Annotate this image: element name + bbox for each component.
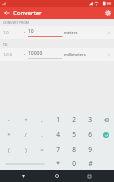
button[interactable]: 3 — [82, 112, 98, 127]
staticText: ( — [8, 146, 10, 154]
staticText: Converter — [13, 9, 42, 17]
staticText: 6 — [88, 130, 92, 139]
button[interactable]: - — [0, 112, 17, 127]
button[interactable]: 0 — [66, 157, 82, 170]
button[interactable]: Backspace — [98, 112, 114, 127]
staticText: 5 — [72, 130, 76, 139]
button[interactable]: Settings — [101, 7, 114, 19]
button[interactable]: Clear — [106, 30, 112, 36]
staticText: 1.0 — [3, 30, 9, 35]
staticText: CONVERT FROM — [3, 20, 29, 25]
staticText: * — [56, 159, 60, 168]
button[interactable]: Recents — [78, 170, 101, 182]
button[interactable]: Clear — [106, 52, 112, 58]
staticText: = — [40, 146, 44, 154]
staticText: 4 — [56, 130, 60, 139]
staticText: 1.0.0 — [3, 52, 13, 57]
staticText: meters — [64, 30, 78, 35]
button[interactable]: ) — [17, 142, 34, 157]
button[interactable]: 1.0 — [0, 26, 114, 39]
staticText: / — [24, 131, 27, 139]
button[interactable]: * — [0, 127, 17, 142]
button[interactable]: # — [82, 157, 98, 170]
button[interactable]: = — [34, 142, 50, 157]
staticText: . — [41, 131, 43, 139]
staticText: millimeters — [64, 52, 86, 57]
button[interactable]: * — [50, 157, 66, 170]
staticText: * — [7, 131, 11, 139]
staticText: 1 — [56, 115, 60, 124]
button[interactable]: ( — [0, 142, 17, 157]
button[interactable]: Navigate up — [0, 7, 13, 19]
button[interactable]: Home — [45, 170, 68, 182]
staticText: 0 — [72, 159, 76, 168]
staticText: 10 — [28, 28, 34, 35]
staticText: 10000 — [28, 50, 43, 57]
button[interactable]: 4 — [50, 127, 66, 142]
button[interactable]: / — [17, 127, 34, 142]
staticText: + — [24, 116, 28, 124]
button[interactable]: + — [17, 112, 34, 127]
staticText: # — [88, 159, 93, 168]
button[interactable]: Enter — [98, 127, 114, 142]
staticText: 3 — [88, 115, 92, 124]
button[interactable]: 8 — [66, 142, 82, 157]
button[interactable]: 2 — [66, 112, 82, 127]
button[interactable]: 5 — [66, 127, 82, 142]
staticText: 9 — [88, 145, 92, 154]
staticText: ) — [25, 146, 27, 154]
button[interactable]: Back — [12, 170, 35, 182]
button[interactable]: 6 — [82, 127, 98, 142]
button[interactable]: Space — [0, 157, 50, 170]
staticText: 2 — [72, 115, 76, 124]
staticText: TO — [3, 42, 8, 47]
staticText: 8 — [72, 145, 76, 154]
staticText: , — [41, 116, 43, 124]
staticText: - — [8, 116, 10, 124]
button[interactable]: 9 — [82, 142, 98, 157]
button[interactable]: 1 — [50, 112, 66, 127]
button[interactable]: 7 — [50, 142, 66, 157]
button[interactable]: 1.0.0 — [0, 48, 114, 61]
staticText: 7 — [56, 145, 60, 154]
